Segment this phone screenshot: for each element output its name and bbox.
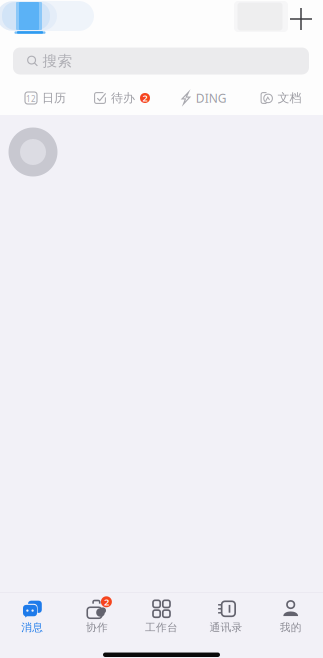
staticText: 日历 (42, 91, 66, 105)
staticText: 消息 (21, 621, 43, 634)
staticText: 我的 (280, 621, 302, 634)
button[interactable]: 2 (65, 589, 129, 642)
staticText: 12 (26, 93, 36, 104)
button[interactable]: 12 (25, 86, 66, 110)
staticText: 待办 (111, 91, 135, 105)
staticText: 2 (104, 596, 109, 608)
staticText: 工作台 (145, 621, 178, 634)
button[interactable]: New chat (284, 2, 318, 36)
button[interactable]: 我的 (258, 589, 323, 642)
staticText: 搜索 (42, 52, 72, 70)
staticText: 协作 (86, 621, 108, 634)
button[interactable]: 通讯录 (194, 589, 258, 642)
button[interactable]: 文档 (260, 86, 301, 110)
staticText: 通讯录 (210, 621, 243, 634)
button[interactable]: 搜索 (13, 47, 309, 74)
button[interactable]: 工作台 (129, 589, 194, 642)
button[interactable]: DING (181, 85, 227, 111)
button[interactable]: 待办 (94, 86, 150, 110)
staticText: 文档 (277, 91, 301, 105)
staticText: DING (196, 90, 227, 106)
button[interactable]: 消息 (0, 589, 65, 642)
staticText: 2 (142, 92, 147, 104)
